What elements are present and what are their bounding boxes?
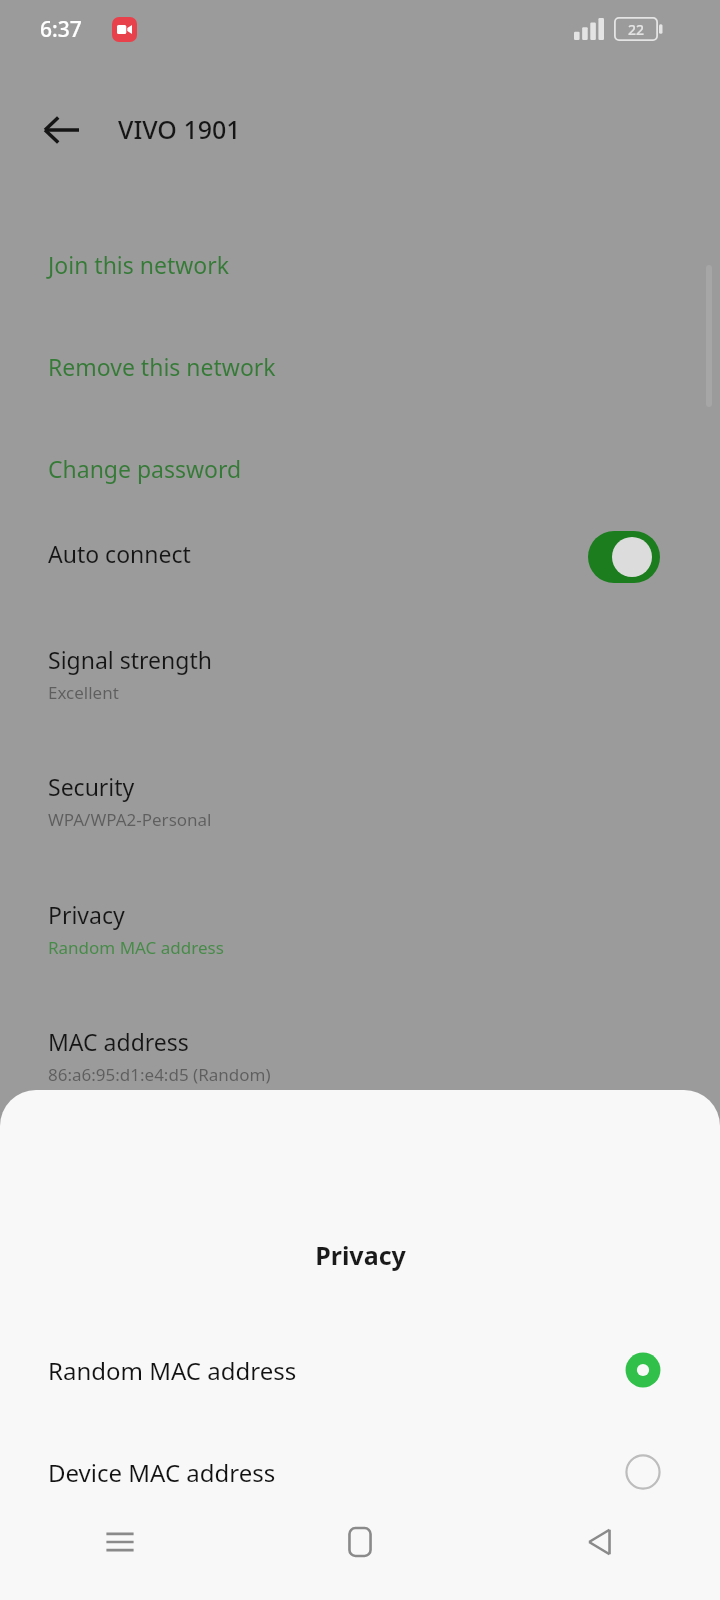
button[interactable]: Device MAC address [0,1430,720,1514]
button[interactable]: Home [240,1484,480,1600]
button[interactable]: Remove this network [0,338,720,400]
staticText: 22 [628,20,645,39]
staticText: Device MAC address [48,1456,276,1489]
staticText: Remove this network [48,351,276,382]
staticText: Random MAC address [48,936,224,959]
staticText: 6:37 [40,15,82,44]
button[interactable]: Back [26,94,98,166]
button[interactable]: Security [0,765,720,861]
staticText: Excellent [48,681,119,704]
button[interactable]: Auto connect [0,522,720,594]
staticText: Join this network [48,249,230,280]
staticText: WPA/WPA2-Personal [48,808,212,831]
button[interactable]: Signal strength [0,638,720,734]
button[interactable]: Random MAC address [0,1328,720,1412]
staticText: Security [48,771,135,802]
staticText: 86:a6:95:d1:e4:d5 (Random) [48,1063,271,1086]
button[interactable]: Back [480,1484,720,1600]
button[interactable]: Change password [0,440,720,502]
button[interactable]: Privacy [0,893,720,989]
staticText: Change password [48,453,242,484]
staticText: Privacy [315,1238,406,1272]
button[interactable]: Recent apps [0,1484,240,1600]
staticText: Privacy [48,899,125,930]
staticText: Signal strength [48,644,212,675]
button[interactable]: Join this network [0,236,720,298]
staticText: MAC address [48,1026,189,1057]
staticText: VIVO 1901 [118,112,241,146]
button[interactable]: MAC address [0,1020,720,1116]
staticText: Random MAC address [48,1354,297,1387]
staticText: Auto connect [48,538,191,569]
